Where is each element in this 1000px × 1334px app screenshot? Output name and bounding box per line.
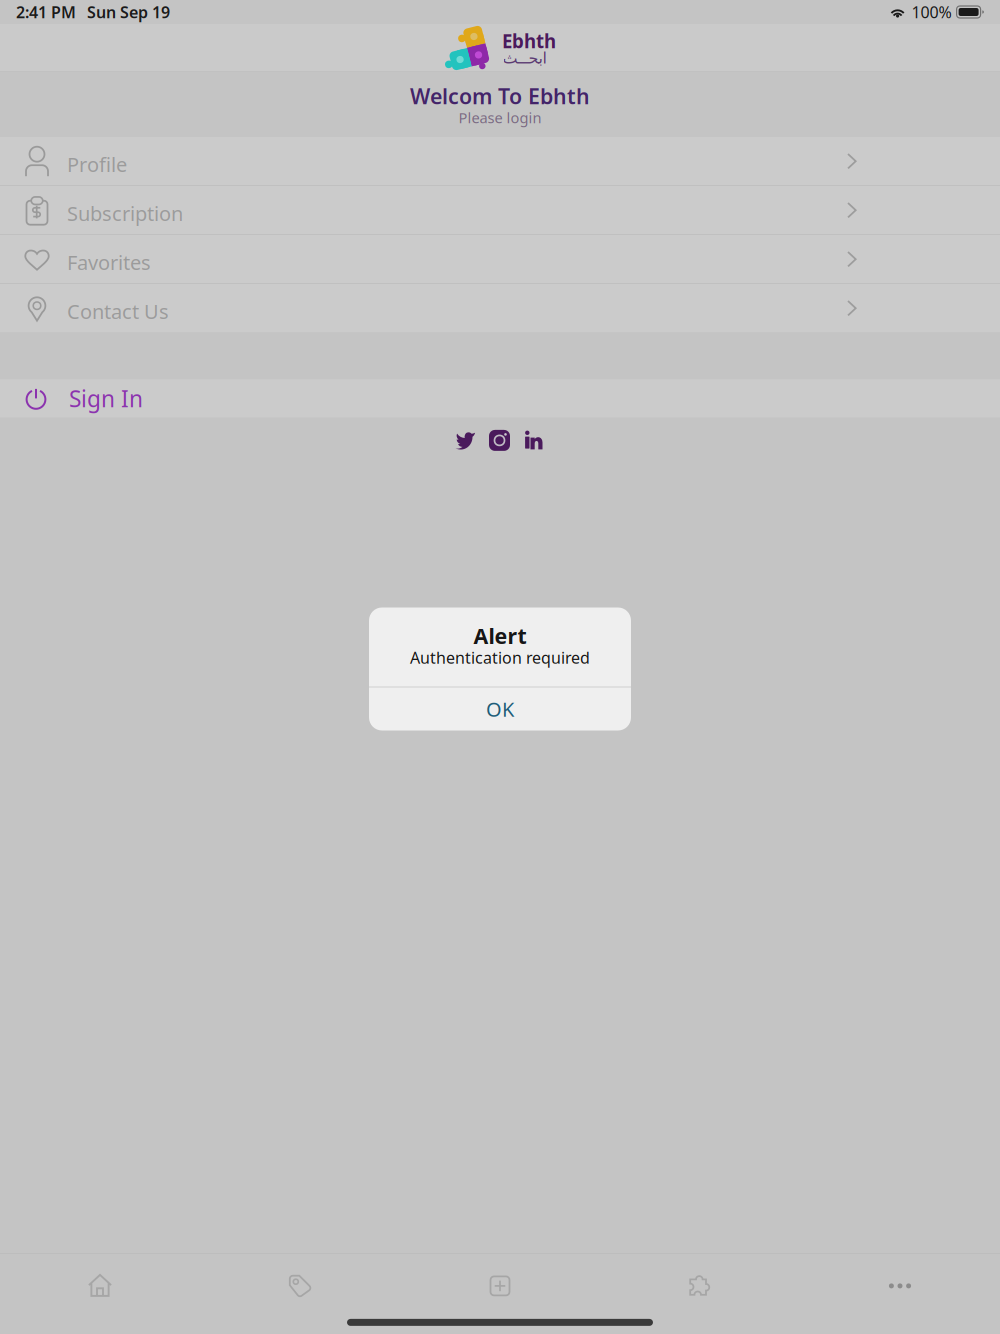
staticText: 2:41 PM (16, 1, 76, 23)
button[interactable]: Add (400, 1273, 600, 1299)
staticText: Authentication required (410, 647, 590, 668)
button[interactable]: LinkedIn (522, 429, 544, 451)
button[interactable]: More (800, 1273, 1000, 1299)
staticText: Sun Sep 19 (87, 1, 170, 23)
button[interactable]: Categories (600, 1273, 800, 1299)
staticText: Alert (473, 621, 526, 650)
button[interactable]: Sign In (0, 379, 1000, 417)
button[interactable]: OK (369, 687, 631, 730)
staticText: OK (486, 696, 514, 722)
staticText: Profile (67, 151, 127, 177)
staticText: Subscription (67, 200, 183, 226)
staticText: Favorites (67, 249, 151, 275)
staticText: Welcom To Ebhth (410, 82, 590, 110)
staticText: 100% (912, 1, 952, 23)
staticText: Contact Us (67, 298, 169, 324)
button[interactable]: Favorites (0, 235, 1000, 283)
button[interactable]: Instagram (488, 429, 510, 451)
staticText: ابحــث (502, 49, 546, 67)
button[interactable]: Contact Us (0, 284, 1000, 332)
button[interactable]: Subscription (0, 186, 1000, 234)
button[interactable]: Profile (0, 137, 1000, 185)
button[interactable]: Twitter (455, 429, 476, 451)
button[interactable]: Offers (200, 1273, 400, 1299)
staticText: Sign In (69, 383, 143, 413)
button[interactable]: Home (0, 1273, 200, 1299)
staticText: Ebhth (502, 29, 556, 53)
staticText: Please login (458, 108, 541, 127)
